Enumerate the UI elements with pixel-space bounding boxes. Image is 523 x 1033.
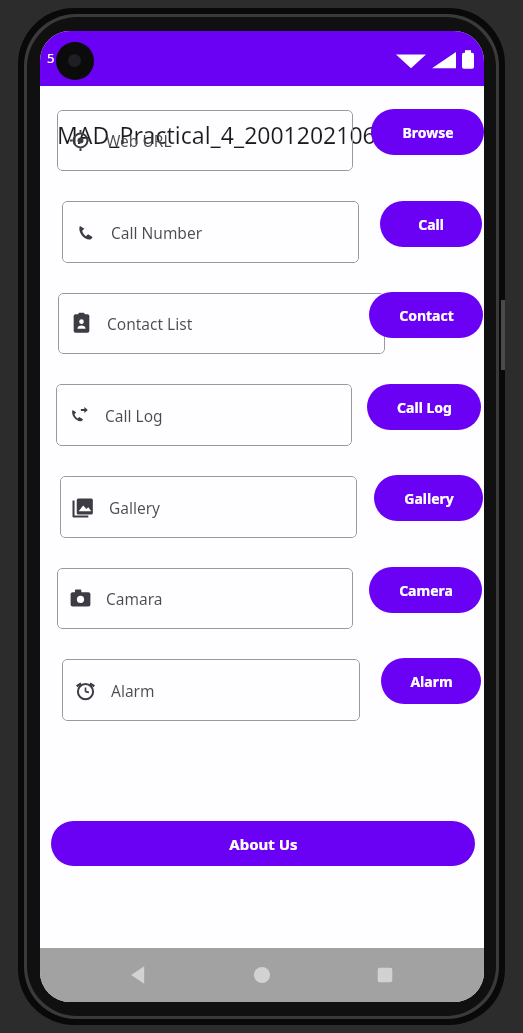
button[interactable]: Browse: [371, 109, 484, 155]
button[interactable]: Recents: [372, 962, 398, 988]
button[interactable]: Gallery: [374, 475, 483, 521]
button[interactable]: Gallery: [60, 476, 357, 538]
button[interactable]: About Us: [51, 821, 475, 866]
button[interactable]: Camara: [57, 568, 353, 629]
staticText: Contact: [399, 306, 454, 325]
staticText: Contact List: [107, 313, 193, 334]
button[interactable]: Home: [249, 962, 275, 988]
button[interactable]: Contact: [369, 292, 483, 338]
staticText: Alarm: [410, 672, 453, 691]
staticText: Call: [418, 215, 444, 234]
button[interactable]: Call Log: [367, 384, 481, 430]
staticText: Camera: [399, 581, 453, 600]
button[interactable]: Call Number: [62, 201, 359, 263]
button[interactable]: Contact List: [58, 293, 385, 354]
button[interactable]: Camera: [369, 567, 482, 613]
staticText: Gallery: [404, 489, 454, 508]
staticText: MAD_Practical_4_20012021066: [57, 119, 389, 150]
staticText: Call Log: [397, 398, 452, 417]
button[interactable]: Alarm: [62, 659, 360, 721]
staticText: Gallery: [109, 497, 161, 518]
staticText: Alarm: [111, 680, 155, 701]
staticText: About Us: [229, 834, 298, 854]
staticText: Call Log: [105, 405, 163, 426]
staticText: Web URL: [106, 130, 172, 151]
button[interactable]: Alarm: [381, 658, 481, 704]
button[interactable]: Call Log: [56, 384, 352, 446]
staticText: Camara: [106, 588, 163, 609]
staticText: 5: [47, 49, 55, 67]
button[interactable]: Call: [380, 201, 482, 247]
staticText: Call Number: [111, 222, 203, 243]
button[interactable]: Back: [126, 962, 152, 988]
button[interactable]: Web URL: [57, 110, 353, 171]
staticText: Browse: [402, 123, 454, 142]
